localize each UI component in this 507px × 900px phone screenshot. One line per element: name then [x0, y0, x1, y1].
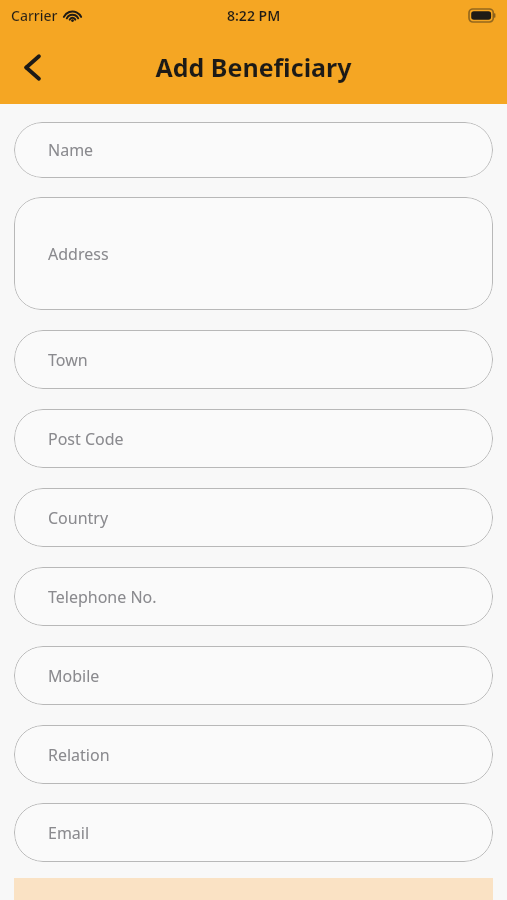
staticText: Email	[48, 822, 90, 844]
button[interactable]: Town	[14, 330, 493, 389]
staticText: Name	[48, 139, 94, 161]
staticText: 8:22 PM	[227, 6, 281, 25]
staticText: Address	[48, 243, 109, 265]
staticText: Add Beneficiary	[155, 50, 352, 84]
staticText: Town	[48, 349, 88, 371]
button[interactable]: Back	[10, 45, 54, 89]
staticText: Relation	[48, 744, 110, 766]
staticText: Post Code	[48, 428, 124, 450]
staticText: Country	[48, 507, 109, 529]
button[interactable]: Telephone No.	[14, 567, 493, 626]
button[interactable]: Post Code	[14, 409, 493, 468]
button[interactable]: Name	[14, 122, 493, 178]
staticText: Mobile	[48, 665, 100, 687]
staticText: Telephone No.	[48, 586, 157, 608]
button[interactable]: Email	[14, 803, 493, 862]
button[interactable]: Mobile	[14, 646, 493, 705]
button[interactable]: Country	[14, 488, 493, 547]
button[interactable]: Relation	[14, 725, 493, 784]
staticText: Carrier	[11, 6, 58, 25]
button[interactable]: Address	[14, 197, 493, 310]
